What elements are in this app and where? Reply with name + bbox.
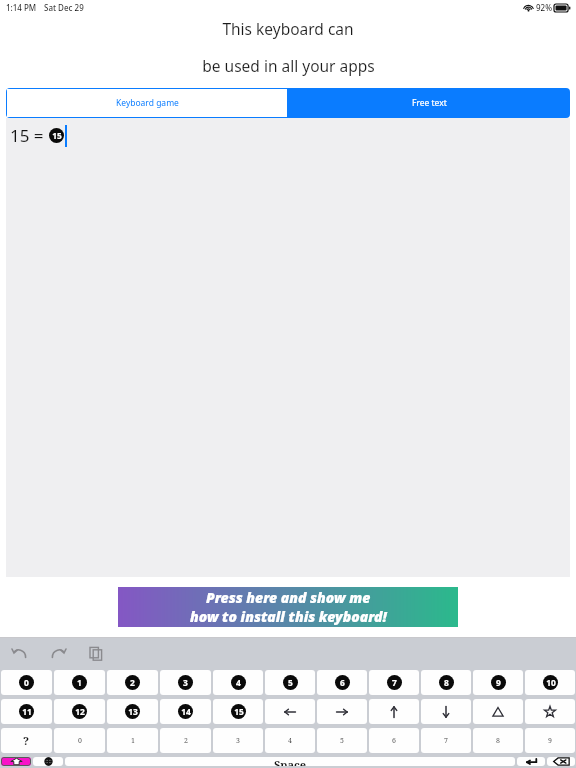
button[interactable]: 1 [107,728,158,753]
button[interactable]: △ [473,699,523,724]
staticText: This keyboard can [222,18,354,39]
button[interactable]: 13 [107,699,158,724]
staticText: 1 [131,736,135,746]
button[interactable]: 5 [265,670,315,695]
staticText: 12 [75,706,85,717]
button[interactable]: 7 [421,728,471,753]
button[interactable]: 1 [54,670,105,695]
staticText: 9 [496,677,501,688]
button[interactable]: Redo [48,643,68,663]
button[interactable]: Free text [288,88,570,118]
staticText: 5 [288,677,293,688]
button[interactable]: 8 [421,670,471,695]
button[interactable]: Copy [86,643,106,663]
staticText: 9 [548,736,552,746]
button[interactable]: 15 = [6,118,570,577]
button[interactable]: → [317,699,367,724]
staticText: 92% [536,2,552,13]
button[interactable]: 6 [317,670,367,695]
staticText: Free text [412,97,447,109]
staticText: 8 [496,736,500,746]
staticText: Keyboard game [116,97,179,109]
staticText: 7 [392,677,397,688]
staticText: 2 [130,677,135,688]
button[interactable]: Switch keyboard [33,757,63,766]
staticText: 4 [236,677,241,688]
button[interactable]: 2 [160,728,211,753]
button[interactable]: ? [1,728,52,753]
staticText: 0 [24,677,29,688]
staticText: 2 [184,736,188,746]
button[interactable]: 2 [107,670,158,695]
staticText: 1:14 PM [6,2,37,13]
button[interactable]: 11 [1,699,52,724]
button[interactable]: 9 [525,728,575,753]
staticText: 3 [236,736,240,746]
staticText: 6 [340,677,345,688]
staticText: 15 [234,706,244,717]
staticText: 8 [444,677,449,688]
button[interactable]: 8 [473,728,523,753]
button[interactable]: Keyboard game [6,88,288,118]
button[interactable]: 4 [265,728,315,753]
staticText: 3 [183,677,188,688]
button[interactable]: Shift [1,757,31,766]
staticText: 13 [128,706,138,717]
staticText: how to install this keyboard! [190,607,387,626]
button[interactable]: ← [265,699,315,724]
staticText: 15 [52,130,62,141]
staticText: 4 [288,736,292,746]
staticText: 6 [392,736,396,746]
button[interactable]: ↑ [369,699,419,724]
button[interactable]: 10 [525,670,575,695]
staticText: 0 [78,736,82,746]
button[interactable]: 6 [369,728,419,753]
staticText: 11 [22,706,32,717]
staticText: Space [274,757,307,766]
staticText: Sat Dec 29 [44,2,84,13]
button[interactable]: 4 [213,670,263,695]
button[interactable]: 5 [317,728,367,753]
button[interactable]: ↓ [421,699,471,724]
button[interactable]: Undo [10,643,30,663]
button[interactable]: 3 [160,670,211,695]
staticText: 7 [444,736,448,746]
staticText: 10 [546,677,556,688]
button[interactable]: Space [65,757,515,766]
staticText: 14 [181,706,191,717]
button[interactable]: 3 [213,728,263,753]
button[interactable]: Backspace [547,757,575,766]
staticText: Press here and show me [206,588,371,607]
button[interactable]: Press here and show me [118,587,458,627]
staticText: be used in all your apps [202,55,375,76]
button[interactable]: 14 [160,699,211,724]
staticText: ? [23,733,30,748]
button[interactable]: 7 [369,670,419,695]
button[interactable]: 12 [54,699,105,724]
button[interactable]: 15 [213,699,263,724]
staticText: 1 [77,677,82,688]
staticText: 5 [340,736,344,746]
staticText: 15 = [10,124,49,147]
button[interactable]: 9 [473,670,523,695]
button[interactable]: 0 [1,670,52,695]
button[interactable]: 0 [54,728,105,753]
button[interactable]: ☆ [525,699,575,724]
button[interactable]: Enter [517,757,545,766]
